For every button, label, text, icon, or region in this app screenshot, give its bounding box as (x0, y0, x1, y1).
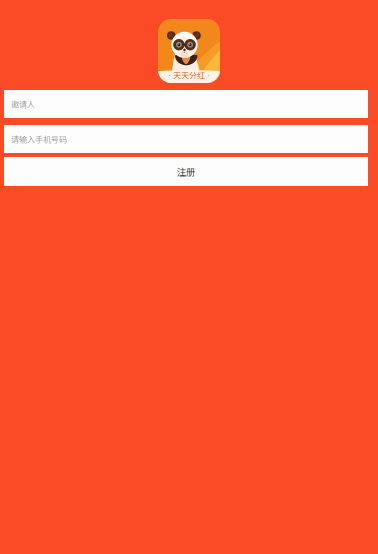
staticText: 天天分红 (173, 69, 205, 81)
button[interactable]: 请输入手机号码 (4, 125, 368, 153)
staticText: 邀请人 (11, 98, 35, 110)
button[interactable]: 邀请人 (4, 90, 368, 118)
button[interactable]: 注册 (4, 157, 368, 186)
staticText: 注册 (177, 165, 195, 178)
staticText: 请输入手机号码 (11, 133, 67, 145)
